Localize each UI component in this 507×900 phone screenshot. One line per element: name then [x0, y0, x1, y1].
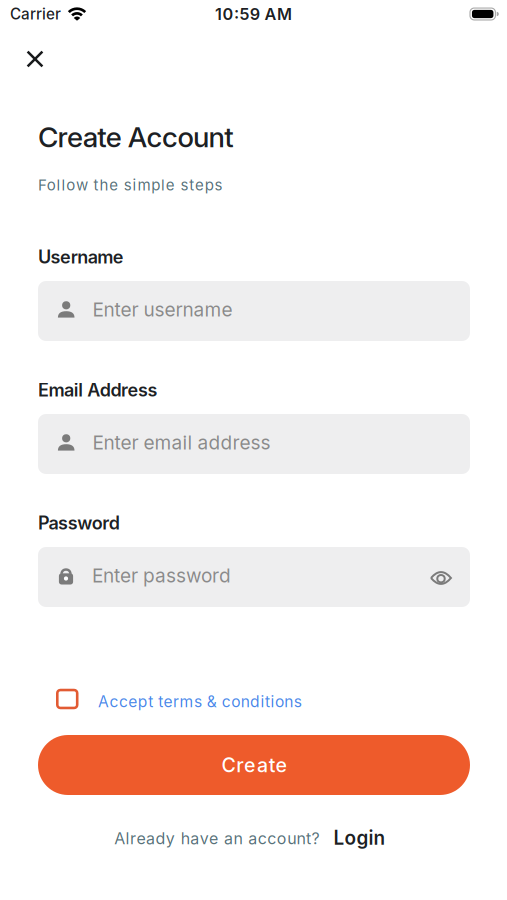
staticText: Username — [38, 246, 124, 268]
staticText: Already have an account? — [114, 829, 319, 848]
button[interactable]: Close — [0, 51, 43, 67]
button[interactable]: Enter username — [38, 281, 470, 341]
button[interactable]: Enter password — [38, 547, 470, 607]
staticText: Password — [38, 512, 120, 534]
staticText: Accept terms & conditions — [98, 692, 302, 711]
button[interactable]: Login — [333, 824, 385, 846]
staticText: 10:59 AM — [215, 4, 292, 24]
staticText: Carrier — [10, 5, 61, 23]
staticText: Enter email address — [92, 431, 270, 454]
staticText: Create Account — [38, 120, 233, 154]
button[interactable]: Enter email address — [38, 414, 470, 474]
button[interactable]: Create — [0, 735, 507, 795]
button[interactable]: Show password — [430, 568, 452, 583]
staticText: Enter username — [92, 298, 232, 321]
staticText: Email Address — [38, 379, 158, 401]
staticText: Create — [221, 753, 286, 777]
staticText: Follow the simple steps — [38, 176, 223, 194]
button[interactable]: Accept terms & conditions — [0, 688, 328, 710]
staticText: Enter password — [92, 564, 231, 587]
staticText: Login — [333, 826, 385, 849]
